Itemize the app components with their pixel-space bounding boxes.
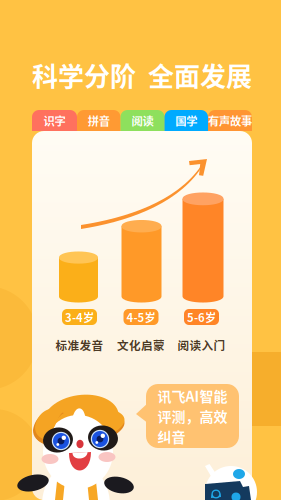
staticText: 5-6岁: [187, 309, 216, 325]
button[interactable]: 有声故事: [208, 110, 252, 131]
button[interactable]: 国学: [164, 110, 208, 131]
staticText: 有声故事: [208, 112, 252, 129]
staticText: 国学: [175, 112, 197, 129]
staticText: 4-5岁: [126, 309, 155, 325]
staticText: 拼音: [88, 112, 110, 129]
staticText: 3-4岁: [65, 309, 94, 325]
button[interactable]: 拼音: [77, 110, 120, 131]
staticText: 文化启蒙: [117, 337, 165, 353]
staticText: 标准发音: [55, 337, 103, 353]
staticText: 科学分阶 全面发展: [32, 56, 252, 94]
staticText: 识字: [43, 112, 65, 129]
button[interactable]: 识字: [32, 110, 77, 131]
staticText: 阅读入门: [177, 337, 225, 353]
button[interactable]: 阅读: [120, 110, 164, 131]
staticText: 讯飞AI智能 评测，高效 纠音: [157, 386, 227, 446]
staticText: 阅读: [131, 112, 153, 129]
